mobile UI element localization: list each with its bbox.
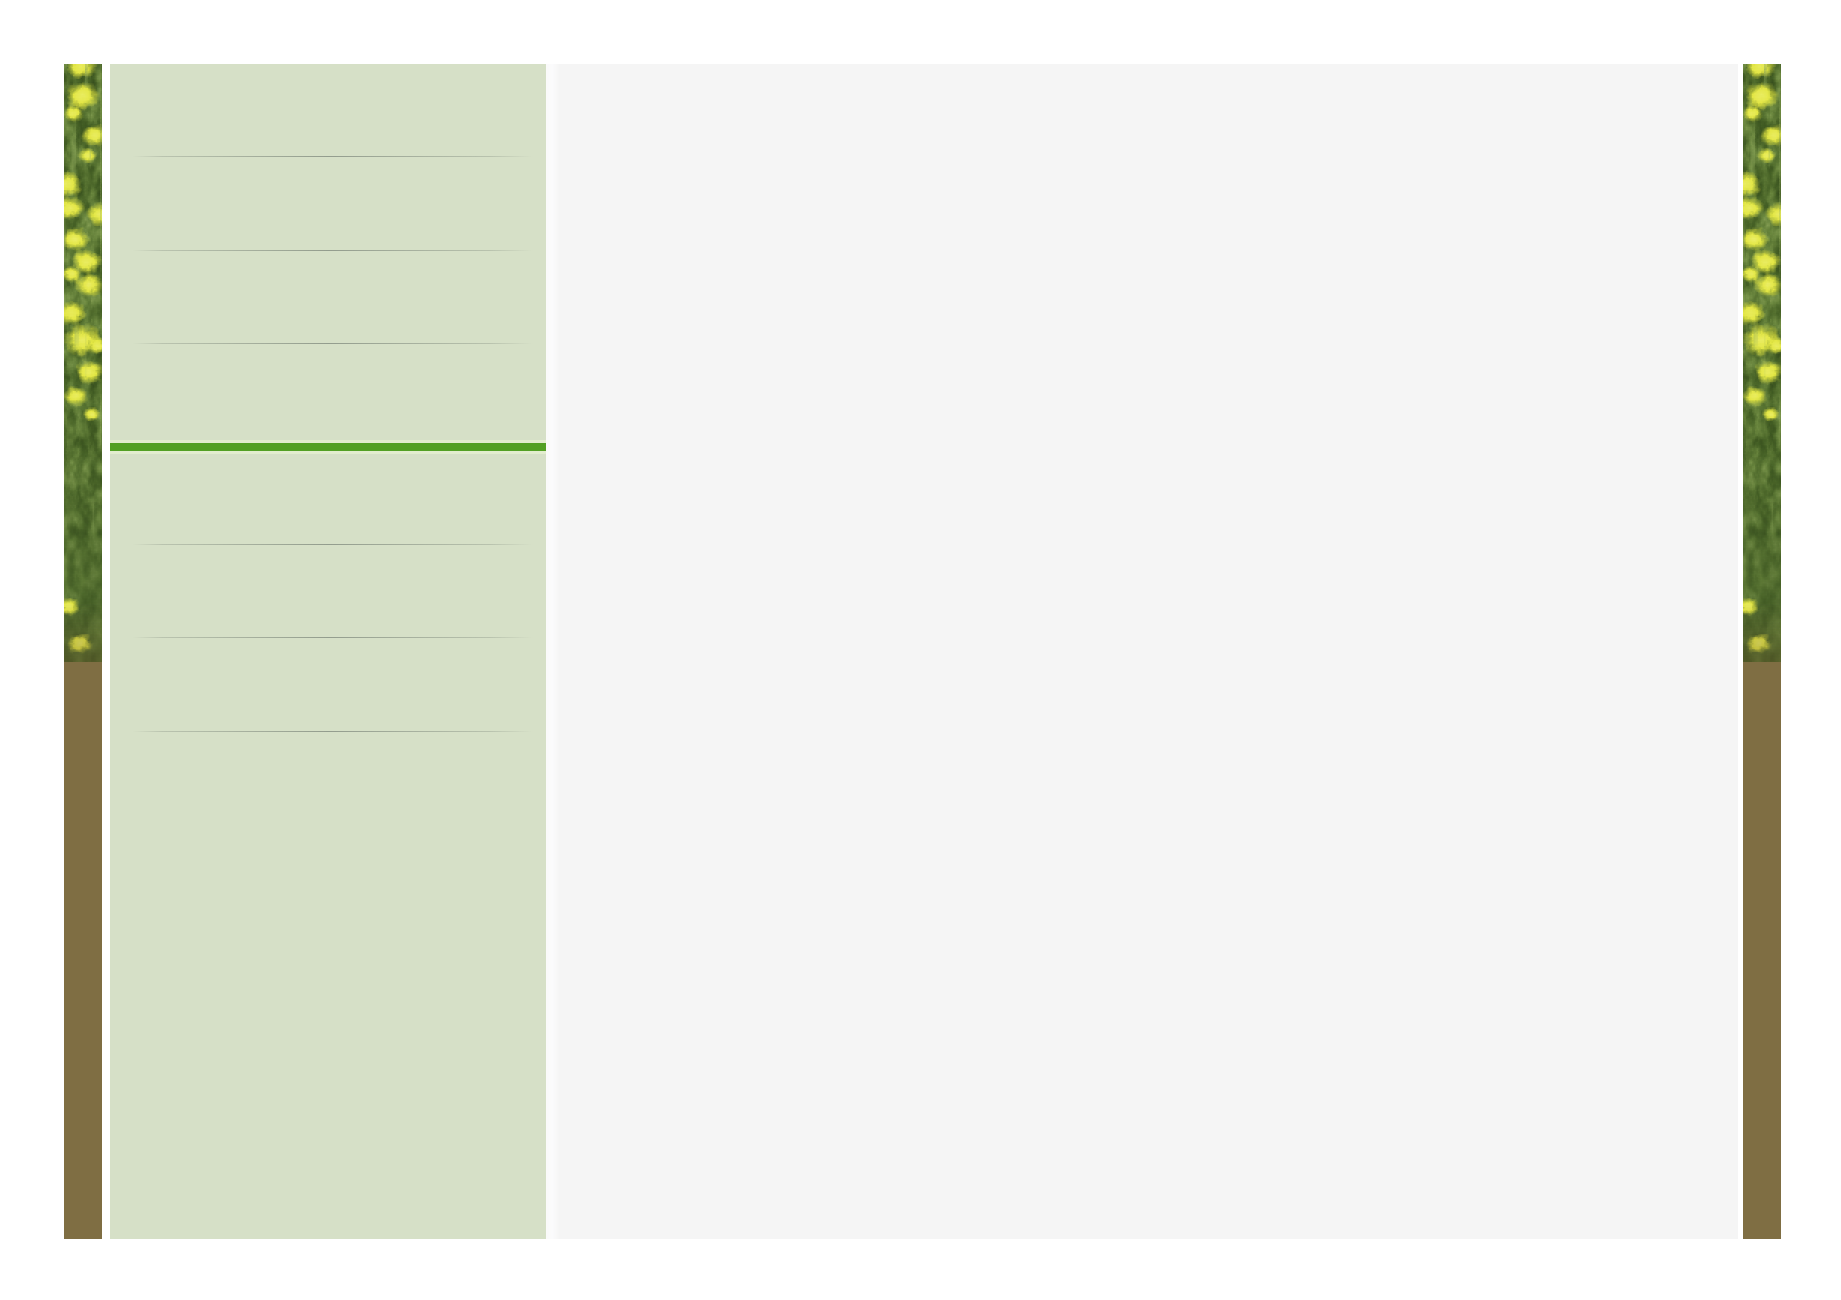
button[interactable]: Navigation item 5 <box>110 443 546 544</box>
button[interactable]: Navigation item 4 <box>110 343 546 443</box>
button[interactable]: Cover photo <box>64 64 102 1239</box>
button[interactable]: Navigation item 3 <box>110 250 546 343</box>
button[interactable]: Navigation item 6 <box>110 544 546 637</box>
button[interactable]: Navigation item 7 <box>110 637 546 731</box>
button[interactable]: Navigation item 2 <box>110 156 546 250</box>
button[interactable]: Cover photo <box>1743 64 1781 1239</box>
